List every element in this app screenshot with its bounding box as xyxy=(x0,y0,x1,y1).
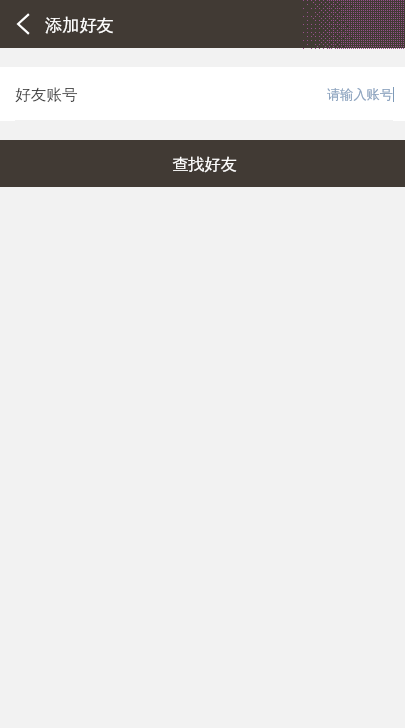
staticText: 好友账号 xyxy=(15,85,78,105)
button[interactable]: 好友账号 xyxy=(0,67,405,121)
button[interactable]: 查找好友 xyxy=(0,140,405,187)
button[interactable]: Back xyxy=(0,0,47,48)
staticText: 请输入账号 xyxy=(327,86,393,103)
staticText: 添加好友 xyxy=(45,14,114,36)
staticText: 查找好友 xyxy=(172,154,237,174)
